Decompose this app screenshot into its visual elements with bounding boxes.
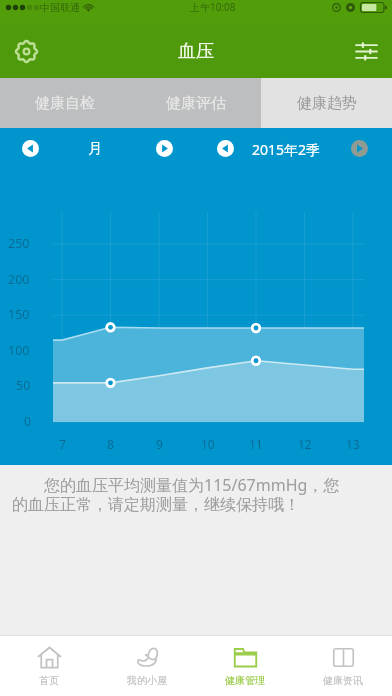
staticText: 9	[156, 436, 163, 452]
button[interactable]: Filter	[344, 29, 388, 73]
button[interactable]: 我的小屋	[98, 636, 196, 696]
button[interactable]: 健康趋势	[261, 78, 392, 128]
staticText: 首页	[39, 674, 59, 687]
staticText: 健康评估	[166, 94, 226, 113]
button[interactable]: 健康管理	[196, 636, 294, 696]
button[interactable]: 首页	[0, 636, 98, 696]
staticText: 您的血压平均测量值为115/67mmHg，您 的血压正常，请定期测量，继续保持哦…	[12, 474, 340, 515]
staticText: 健康趋势	[297, 94, 357, 113]
staticText: 血压	[178, 40, 214, 63]
staticText: 健康管理	[225, 674, 265, 687]
button[interactable]: Next month	[151, 135, 177, 161]
staticText: 150	[8, 306, 30, 323]
staticText: 50	[16, 377, 31, 394]
staticText: 7	[59, 436, 66, 452]
staticText: 250	[8, 235, 30, 252]
staticText: 2015年2季	[252, 140, 321, 159]
staticText: 11	[249, 436, 263, 452]
staticText: 健康自检	[35, 94, 95, 113]
staticText: 月	[88, 140, 102, 158]
staticText: 上午10:08	[190, 0, 236, 14]
staticText: 中国联通	[40, 1, 80, 14]
staticText: 8	[107, 436, 114, 452]
staticText: 12	[298, 436, 312, 452]
button[interactable]: Previous quarter	[212, 135, 238, 161]
staticText: 我的小屋	[127, 674, 167, 687]
button[interactable]: Previous month	[17, 135, 43, 161]
staticText: 0	[24, 413, 32, 430]
button[interactable]: 健康资讯	[294, 636, 392, 696]
button[interactable]: Next quarter	[346, 135, 372, 161]
button[interactable]: 健康评估	[130, 78, 261, 128]
button[interactable]: Settings	[4, 29, 48, 73]
staticText: 100	[8, 342, 30, 359]
staticText: 10	[201, 436, 215, 452]
staticText: 13	[346, 436, 360, 452]
button[interactable]: 健康自检	[0, 78, 130, 128]
staticText: 健康资讯	[323, 674, 363, 687]
staticText: 200	[8, 271, 30, 288]
